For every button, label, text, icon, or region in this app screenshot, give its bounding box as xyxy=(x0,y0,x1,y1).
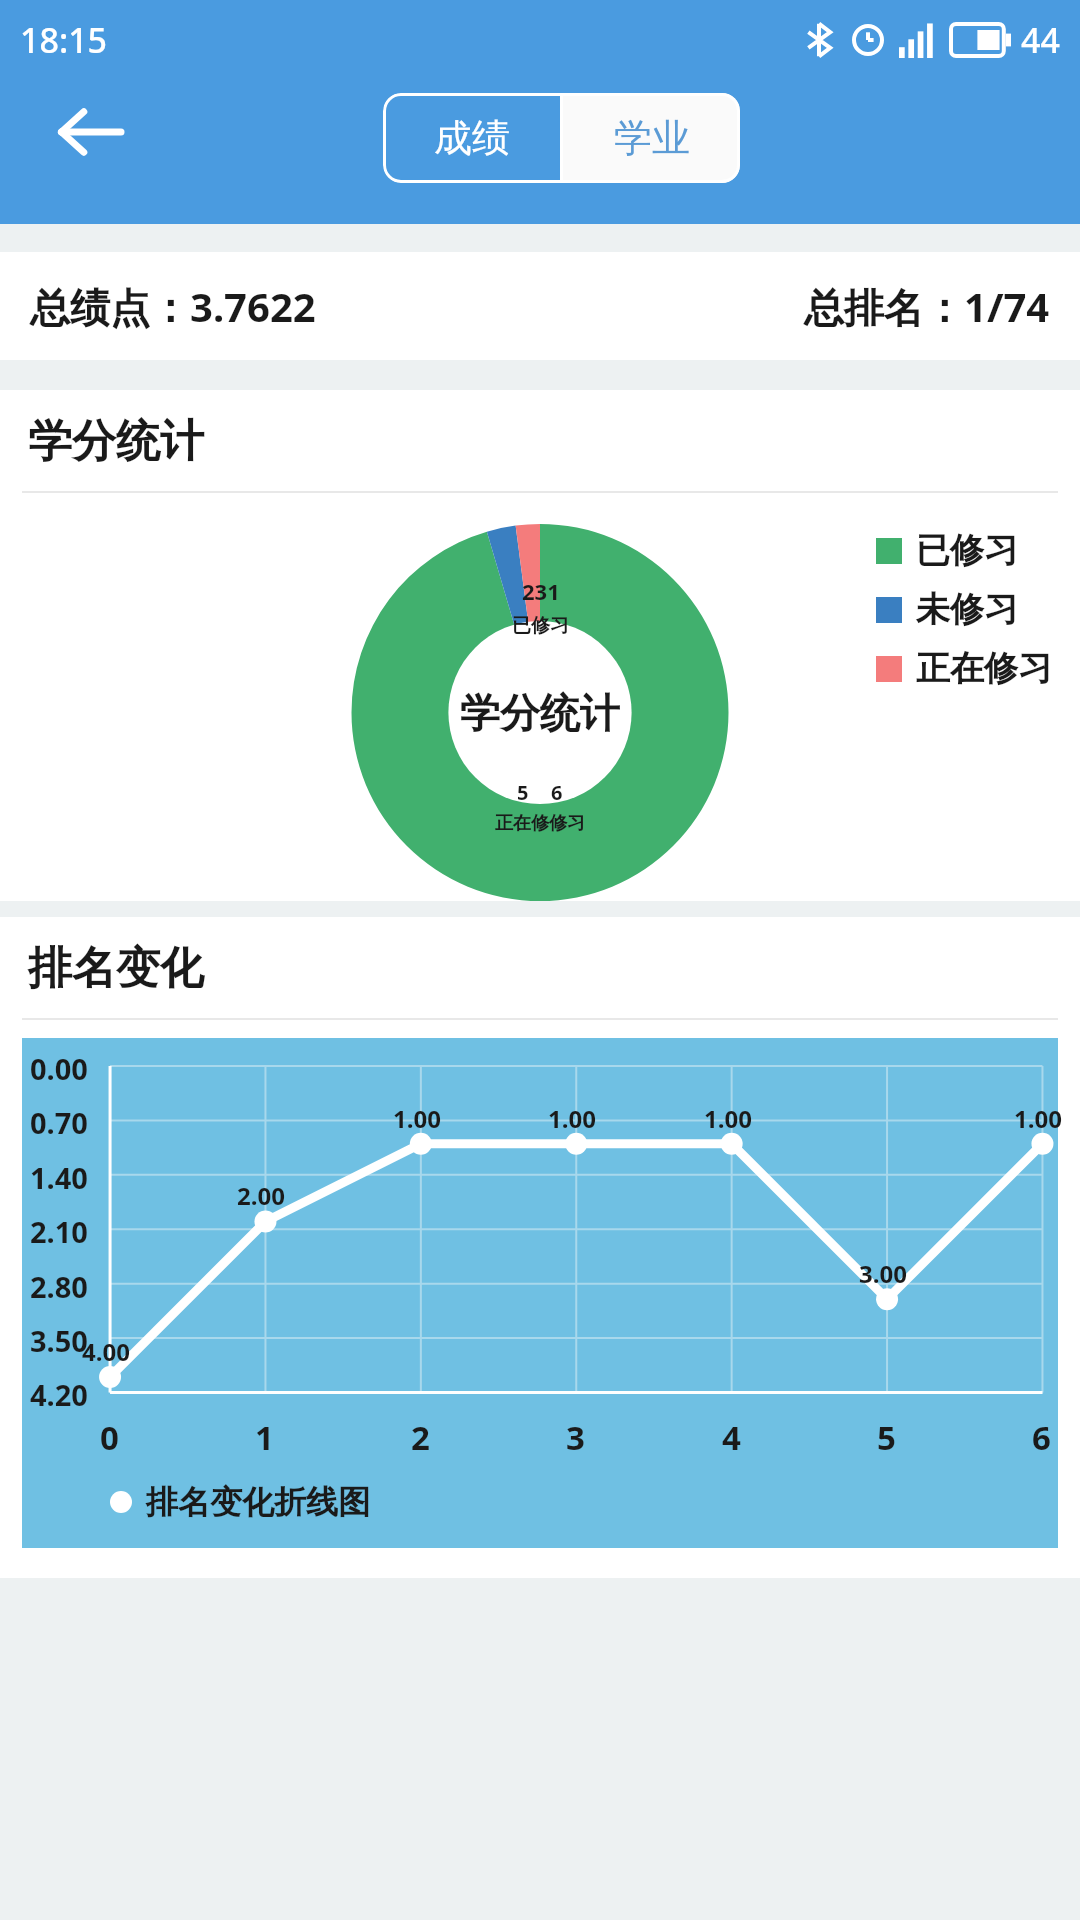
staticText: 6 xyxy=(1032,1415,1051,1460)
staticText: 5 xyxy=(877,1415,896,1460)
button[interactable]: 总绩点：3.7622 xyxy=(30,252,1050,360)
staticText: 3.50 xyxy=(30,1321,88,1360)
staticText: 0.70 xyxy=(30,1103,88,1142)
staticText: 231 xyxy=(522,576,560,606)
staticText: 1.00 xyxy=(704,1102,752,1135)
staticText: 44 xyxy=(1021,17,1060,63)
staticText: 1.40 xyxy=(30,1158,88,1197)
staticText: 总排名：1/74 xyxy=(804,279,1050,334)
staticText: 学分统计 xyxy=(28,414,204,469)
staticText: 1.00 xyxy=(393,1102,441,1135)
staticText: 0.00 xyxy=(30,1049,88,1088)
staticText: 学业 xyxy=(614,114,690,162)
staticText: 2.00 xyxy=(237,1179,285,1212)
staticText: 1.00 xyxy=(1014,1102,1062,1135)
staticText: 学分统计 xyxy=(460,688,620,738)
staticText: 0 xyxy=(100,1415,119,1460)
staticText: 4.00 xyxy=(82,1335,130,1368)
staticText: 未修习 xyxy=(916,588,1018,631)
staticText: 正在修修习 xyxy=(495,812,585,835)
staticText: 2 xyxy=(411,1415,430,1460)
staticText: 成绩 xyxy=(434,114,510,162)
staticText: 已修习 xyxy=(512,614,569,638)
staticText: 18:15 xyxy=(20,17,108,63)
staticText: 1 xyxy=(255,1415,274,1460)
staticText: 2.80 xyxy=(30,1267,88,1306)
button[interactable]: Back xyxy=(44,86,136,178)
staticText: 排名变化折线图 xyxy=(146,1482,370,1522)
staticText: 总绩点：3.7622 xyxy=(30,279,316,334)
staticText: 排名变化 xyxy=(28,941,204,996)
staticText: 已修习 xyxy=(916,529,1018,572)
button[interactable]: 学业 xyxy=(563,93,740,183)
staticText: 4.20 xyxy=(30,1375,88,1414)
staticText: 1.00 xyxy=(548,1102,596,1135)
staticText: 6 xyxy=(551,779,563,806)
button[interactable]: 成绩 xyxy=(383,93,560,183)
staticText: 正在修习 xyxy=(916,647,1052,690)
staticText: 3 xyxy=(566,1415,585,1460)
staticText: 3.00 xyxy=(859,1257,907,1290)
staticText: 5 xyxy=(517,779,529,806)
staticText: 4 xyxy=(722,1415,741,1460)
staticText: 2.10 xyxy=(30,1212,88,1251)
